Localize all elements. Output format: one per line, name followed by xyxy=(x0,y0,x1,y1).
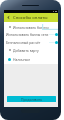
button[interactable]: Использовать бонусы xyxy=(4,23,58,31)
staticText: Безналичный расчёт xyxy=(6,40,41,45)
staticText: Продолжить xyxy=(21,97,43,102)
button[interactable]: Продолжить xyxy=(7,96,56,102)
staticText: Наличные xyxy=(13,57,31,62)
staticText: Способы оплаты xyxy=(13,15,48,21)
button[interactable]: Безналичный расчёт xyxy=(4,39,58,46)
staticText: Использовать бонусы xyxy=(13,25,49,30)
staticText: Добавить карту xyxy=(13,48,39,53)
button[interactable]: Наличные xyxy=(4,55,58,63)
button[interactable]: Использовать баллы сети xyxy=(4,31,58,38)
staticText: Использовать баллы сети xyxy=(6,32,49,37)
button[interactable]: Добавить карту xyxy=(4,46,58,54)
button[interactable]: Back xyxy=(4,13,58,22)
other: Back xyxy=(7,16,10,19)
